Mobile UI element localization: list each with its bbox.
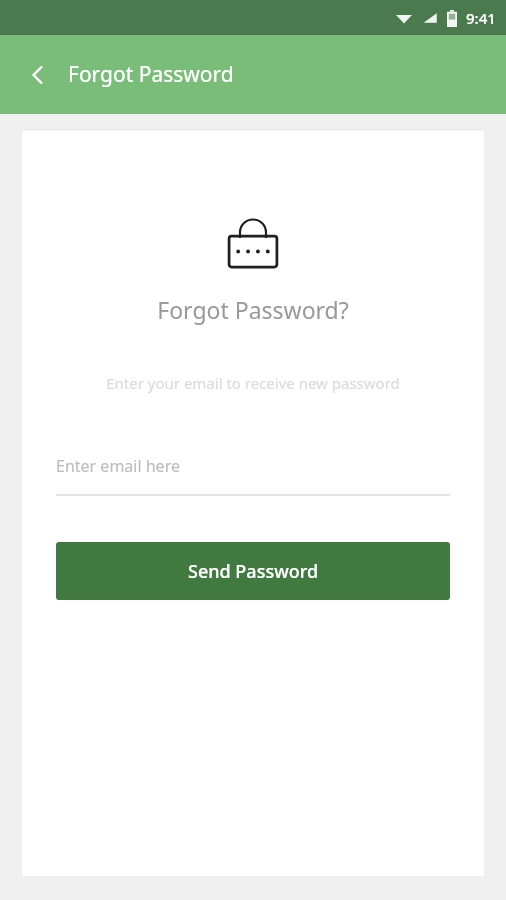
staticText: 9:41: [466, 8, 496, 28]
staticText: Enter email here: [56, 455, 180, 477]
button[interactable]: Enter email here: [56, 455, 450, 496]
staticText: Forgot Password: [68, 60, 234, 89]
button[interactable]: Send Password: [56, 542, 450, 600]
staticText: Send Password: [188, 559, 319, 584]
staticText: Enter your email to receive new password: [106, 373, 400, 393]
button[interactable]: Back: [14, 51, 62, 99]
staticText: Forgot Password?: [157, 294, 349, 325]
